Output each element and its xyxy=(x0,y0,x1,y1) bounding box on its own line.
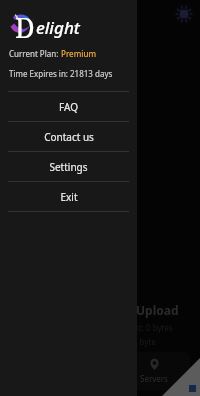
staticText: Contact us xyxy=(44,130,94,144)
staticText: FAQ xyxy=(59,100,78,114)
button[interactable]: FAQ xyxy=(0,92,137,121)
staticText: Servers xyxy=(140,373,168,384)
staticText: ment: 0 bytes xyxy=(122,322,173,333)
staticText: D xyxy=(15,9,35,41)
staticText: Time Expires in: 21813 days xyxy=(9,68,113,79)
staticText: Upload xyxy=(136,302,179,318)
staticText: Exit xyxy=(60,190,78,204)
button[interactable]: Settings xyxy=(0,152,137,181)
button[interactable]: Servers xyxy=(118,352,190,390)
staticText: Current Plan: xyxy=(9,48,61,59)
staticText: Settings xyxy=(49,160,88,174)
button[interactable]: Settings xyxy=(172,2,196,26)
staticText: al: 0 byte xyxy=(122,336,156,347)
button[interactable]: Exit xyxy=(0,182,137,211)
button[interactable]: Contact us xyxy=(0,122,137,151)
staticText: Premium xyxy=(61,48,97,59)
staticText: elight xyxy=(36,16,80,39)
